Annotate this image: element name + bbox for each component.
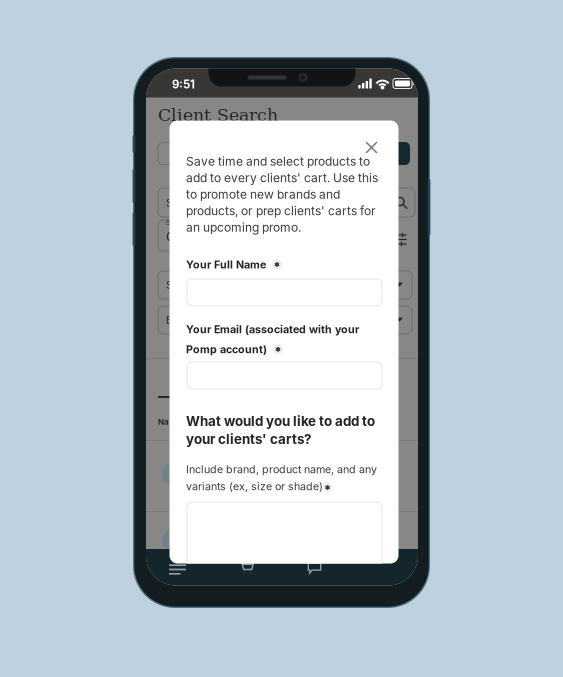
staticText: Your Email (associated with your (186, 323, 359, 336)
button[interactable]: Messages (284, 554, 342, 580)
staticText: variants (ex, size or shade) (186, 480, 323, 493)
staticText: S (166, 196, 173, 209)
staticText: Save time and select products to add to … (186, 154, 378, 235)
staticText: Client Search (158, 105, 278, 125)
staticText: B (166, 313, 173, 326)
button[interactable]: Orders (146, 555, 204, 581)
staticText: Se (166, 218, 174, 227)
staticText: C (166, 228, 176, 245)
staticText: Na (158, 417, 169, 427)
staticText: S (166, 278, 173, 291)
button[interactable]: Cart (216, 554, 274, 580)
staticText: What would you like to add to your clien… (186, 413, 375, 447)
staticText: Your Full Name (186, 258, 266, 271)
staticText: Include brand, product name, and any (186, 463, 377, 476)
staticText: 9:51 (172, 77, 195, 91)
staticText: Pomp account) (186, 343, 267, 356)
button[interactable]: Close (358, 134, 384, 160)
button[interactable]: Filters (386, 225, 412, 251)
